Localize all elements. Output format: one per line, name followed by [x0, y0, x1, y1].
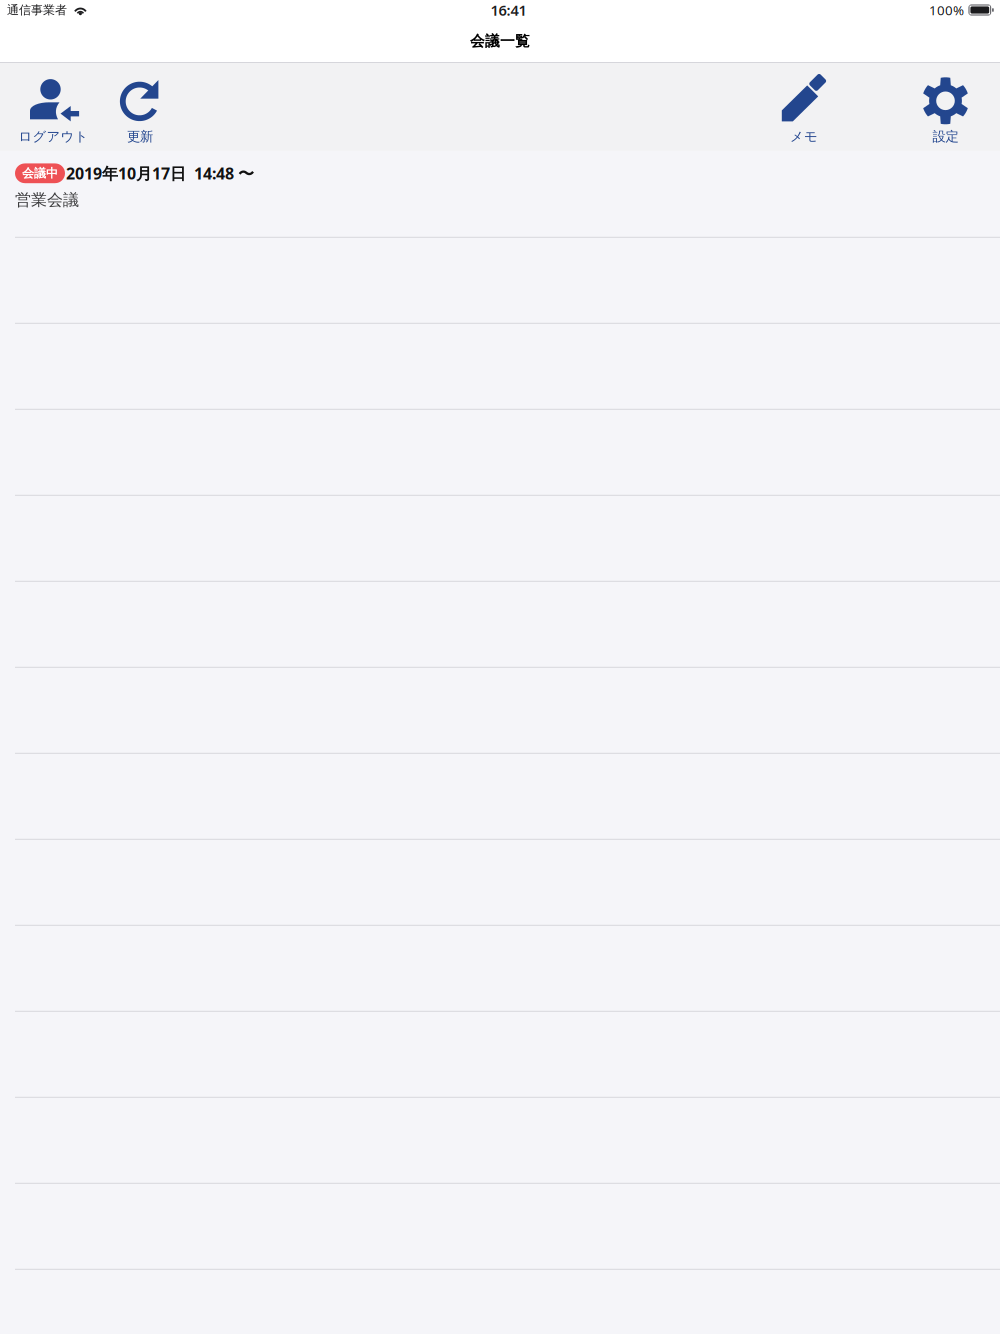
button[interactable]: 更新	[107, 63, 173, 151]
staticText: 営業会議	[15, 190, 79, 210]
staticText: 100%	[929, 1, 964, 19]
staticText: 設定	[932, 128, 958, 145]
staticText: 会議中	[22, 166, 58, 181]
button[interactable]: メモ	[717, 63, 891, 151]
staticText: 2019年10月17日 14:48 〜	[66, 163, 254, 184]
staticText: 更新	[127, 128, 153, 145]
button[interactable]: ログアウト	[0, 63, 107, 151]
staticText: メモ	[790, 128, 818, 145]
staticText: 通信事業者	[7, 3, 67, 17]
staticText: ログアウト	[18, 128, 88, 145]
staticText: 会議一覧	[470, 32, 530, 50]
button[interactable]: 設定	[891, 63, 1000, 151]
button[interactable]: 会議中	[0, 151, 1000, 237]
staticText: 16:41	[490, 0, 526, 20]
